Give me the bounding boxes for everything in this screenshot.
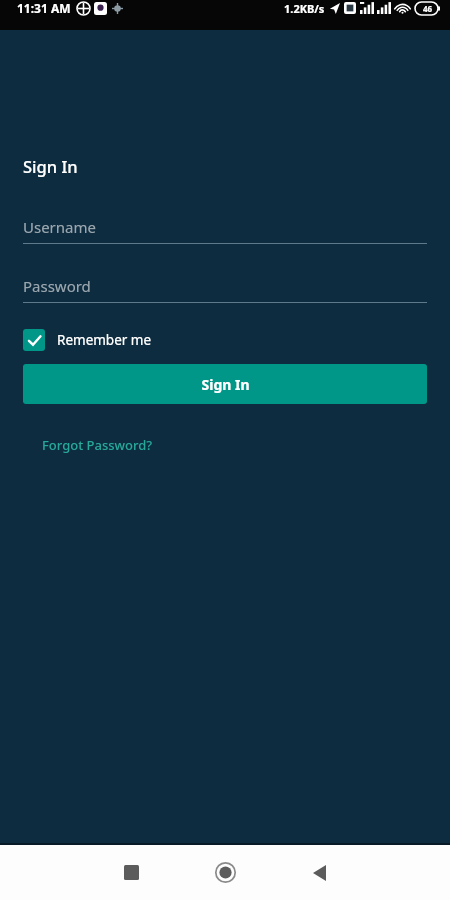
button[interactable]: Password [23,276,427,303]
button[interactable]: Forgot Password? [35,432,160,458]
button[interactable]: Username [23,217,427,244]
staticText: Sign In [201,375,250,394]
staticText: 1.2KB/s [284,1,325,16]
staticText: Password [23,276,91,296]
staticText: 11:31 AM [17,0,71,16]
staticText: Remember me [57,331,152,349]
staticText: Username [23,217,96,237]
button[interactable]: Remember me [23,329,152,351]
button[interactable]: Home [178,845,272,900]
staticText: Forgot Password? [42,436,153,454]
staticText: 46 [423,3,433,14]
staticText: Sign In [23,155,78,177]
button[interactable]: Recent apps [84,845,178,900]
button[interactable]: Sign In [23,364,427,404]
button[interactable]: Back [272,845,366,900]
